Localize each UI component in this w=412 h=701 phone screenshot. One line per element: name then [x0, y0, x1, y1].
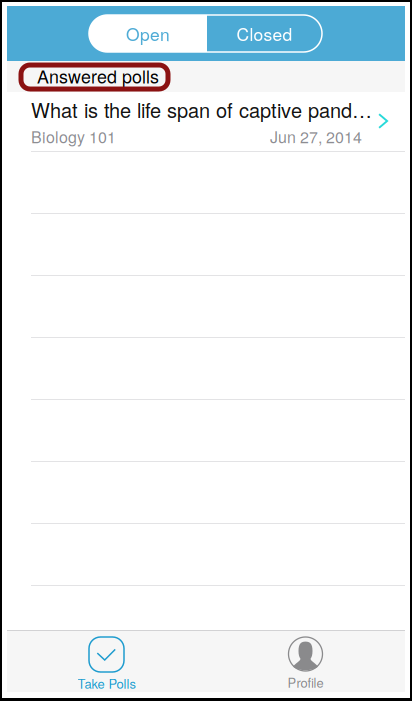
staticText: Jun 27, 2014: [270, 125, 362, 148]
staticText: Biology 101: [31, 125, 116, 148]
button[interactable]: Open: [89, 15, 207, 52]
staticText: What is the life span of captive pandas?: [31, 95, 381, 124]
button[interactable]: Closed: [207, 15, 322, 52]
staticText: Closed: [236, 21, 292, 46]
staticText: Profile: [287, 673, 323, 691]
staticText: Take Polls: [77, 674, 135, 692]
button[interactable]: Take Polls: [7, 637, 206, 692]
button[interactable]: What is the life span of captive pandas?: [7, 92, 405, 151]
staticText: Open: [126, 21, 170, 46]
button[interactable]: Profile: [206, 637, 405, 691]
staticText: Answered polls: [37, 63, 159, 89]
